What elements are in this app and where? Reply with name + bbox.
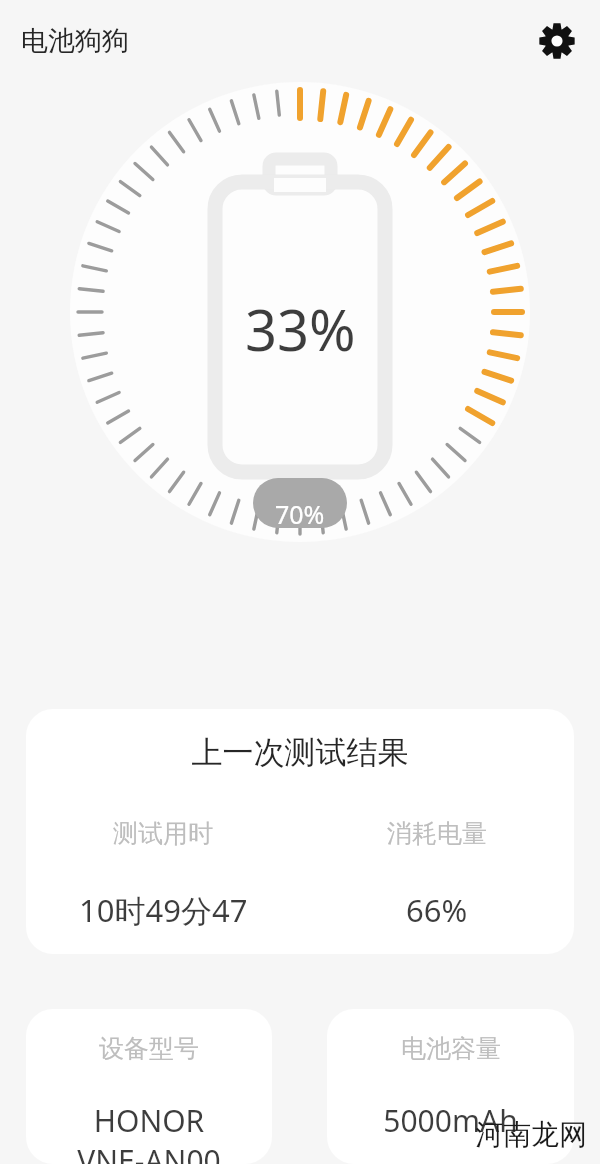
button[interactable]: Settings xyxy=(534,18,580,64)
staticText: 测试用时 xyxy=(113,818,213,849)
staticText: 电池狗狗 xyxy=(21,24,129,58)
staticText: 70% xyxy=(275,497,325,531)
staticText: 66% xyxy=(406,889,468,931)
button[interactable]: 电池容量 xyxy=(327,1009,574,1164)
staticText: 河南龙网 xyxy=(475,1117,587,1152)
staticText: 10时49分47 xyxy=(79,889,248,931)
button[interactable]: 上一次测试结果 xyxy=(26,709,574,954)
staticText: 上一次测试结果 xyxy=(26,733,574,772)
staticText: 电池容量 xyxy=(401,1033,501,1064)
staticText: 5000mAh xyxy=(383,1100,518,1141)
staticText: 设备型号 xyxy=(99,1033,199,1064)
button[interactable]: 设备型号 xyxy=(26,1009,272,1164)
staticText: 33% xyxy=(245,291,356,367)
staticText: HONOR VNE-AN00 xyxy=(77,1100,221,1164)
staticText: 消耗电量 xyxy=(387,818,487,849)
